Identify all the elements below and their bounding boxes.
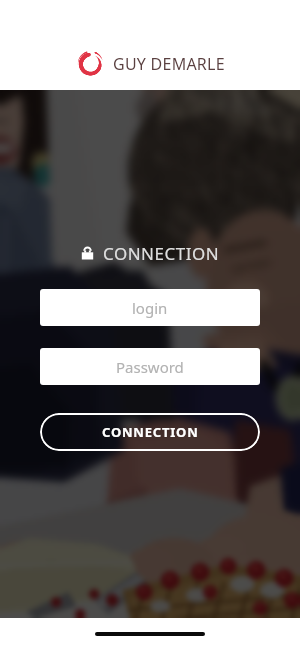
staticText: Password: [116, 357, 184, 377]
button[interactable]: login: [40, 289, 260, 326]
button[interactable]: CONNECTION: [40, 413, 260, 451]
button[interactable]: Password: [40, 348, 260, 385]
staticText: CONNECTION: [103, 242, 220, 265]
staticText: login: [132, 298, 168, 318]
staticText: CONNECTION: [102, 423, 199, 441]
staticText: GUY DEMARLE: [113, 53, 225, 75]
